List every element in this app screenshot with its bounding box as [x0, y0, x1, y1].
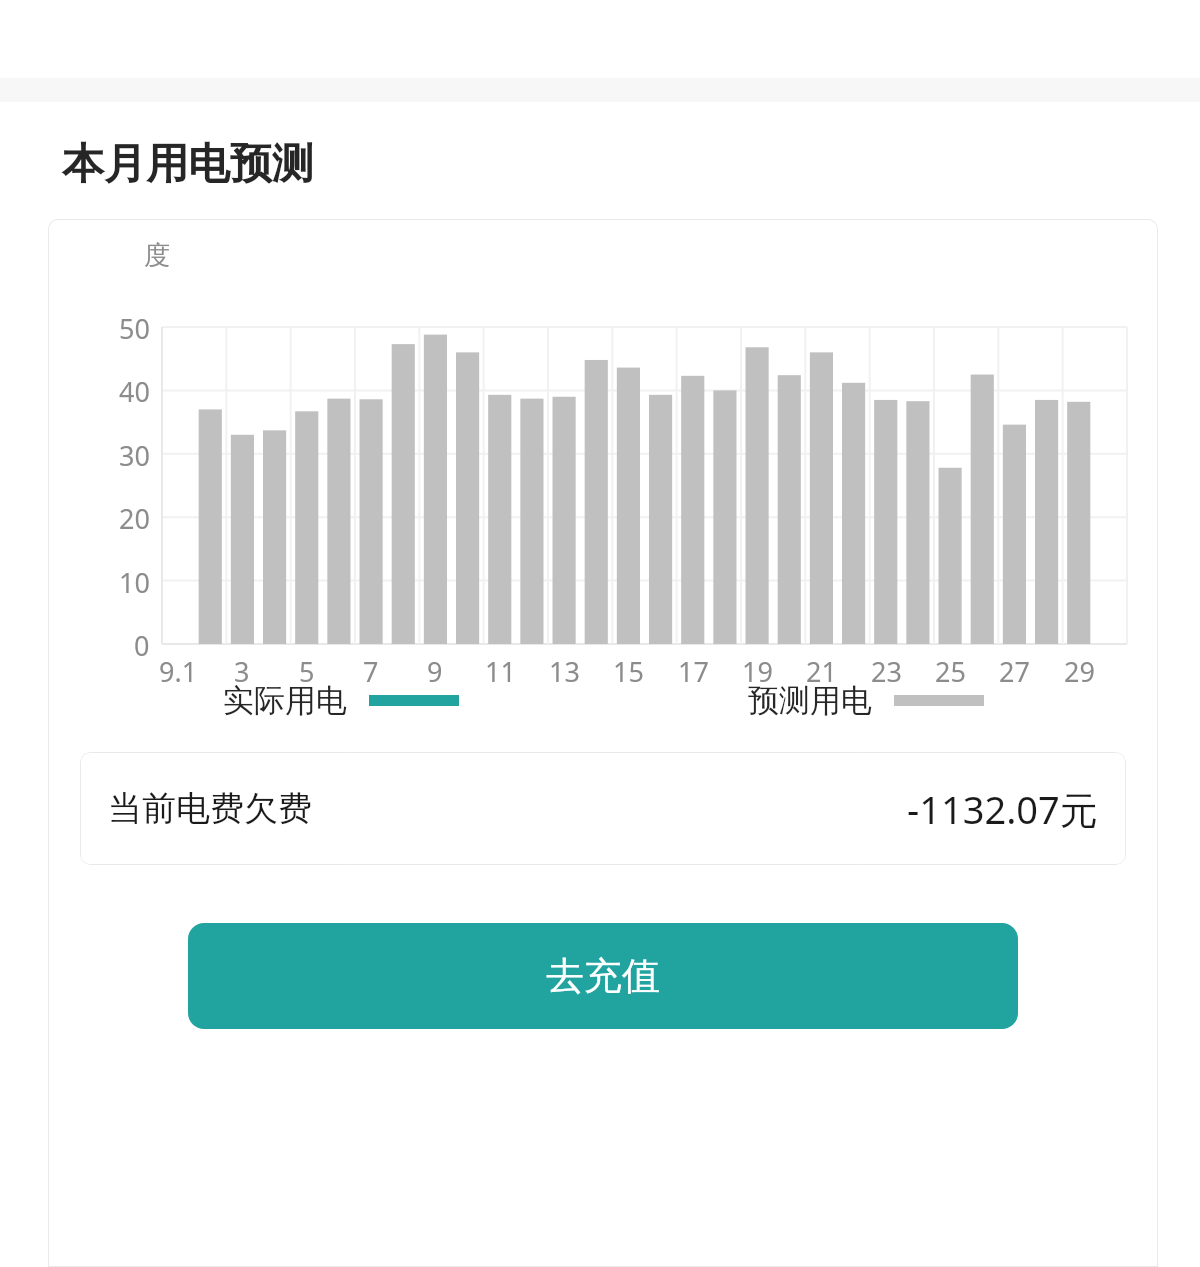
staticText: 度: [144, 239, 170, 272]
staticText: 50: [119, 310, 150, 347]
staticText: 11: [485, 653, 516, 690]
staticText: 27: [999, 653, 1030, 690]
staticText: 13: [549, 653, 580, 690]
staticText: 当前电费欠费: [108, 787, 312, 830]
staticText: 17: [678, 653, 709, 690]
staticText: 0: [134, 627, 150, 664]
staticText: 9.1: [159, 653, 198, 690]
staticText: 29: [1064, 653, 1095, 690]
button[interactable]: 当前电费欠费: [80, 752, 1126, 865]
staticText: 9: [427, 653, 443, 690]
staticText: 去充值: [546, 952, 660, 1000]
staticText: 5: [299, 653, 315, 690]
staticText: 本月用电预测: [62, 138, 314, 191]
staticText: 30: [119, 437, 150, 474]
staticText: 23: [871, 653, 902, 690]
staticText: 15: [613, 653, 644, 690]
staticText: 实际用电: [223, 681, 347, 720]
staticText: 19: [742, 653, 773, 690]
staticText: 40: [119, 373, 150, 410]
button[interactable]: 去充值: [188, 923, 1018, 1029]
staticText: -1132.07元: [907, 783, 1098, 835]
staticText: 21: [806, 653, 837, 690]
staticText: 7: [363, 653, 379, 690]
staticText: 25: [935, 653, 966, 690]
staticText: 20: [119, 500, 150, 537]
staticText: 3: [234, 653, 250, 690]
staticText: 10: [119, 564, 150, 601]
staticText: 预测用电: [748, 681, 872, 720]
